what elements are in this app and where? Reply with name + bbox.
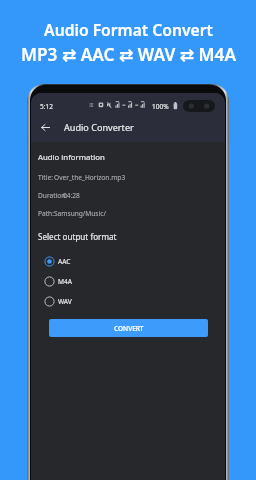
staticText: WAV (58, 297, 72, 306)
staticText: Select output format (38, 231, 117, 242)
staticText: M4A (58, 277, 72, 286)
staticText: MP3 ⇄ AAC ⇄ WAV ⇄ M4A (21, 43, 236, 66)
staticText: Audio information (38, 152, 105, 163)
staticText: Over_the_Horizon.mp3 (54, 173, 126, 182)
staticText: Samsung/Music/ (54, 209, 106, 218)
button[interactable]: Back (36, 118, 54, 136)
staticText: 100% (152, 102, 169, 111)
staticText: 5:12 (40, 102, 53, 111)
staticText: Duration: (38, 191, 68, 200)
staticText: Path: (38, 209, 54, 218)
staticText: Audio Converter (64, 121, 134, 133)
button[interactable]: AAC (44, 251, 124, 271)
staticText: 04:28 (63, 191, 80, 200)
button[interactable]: WAV (44, 291, 124, 311)
staticText: Audio Format Convert (44, 19, 213, 40)
button[interactable]: CONVERT (49, 319, 208, 337)
button[interactable]: M4A (44, 271, 124, 291)
staticText: CONVERT (114, 324, 144, 333)
staticText: AAC (58, 257, 71, 266)
staticText: Title: (38, 173, 53, 182)
